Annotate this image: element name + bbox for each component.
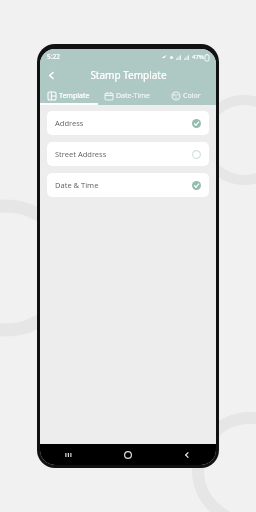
button[interactable]: Color (157, 86, 216, 105)
button[interactable]: Back (157, 444, 216, 465)
staticText: Stamp Template (90, 68, 167, 82)
staticText: Date & Time (55, 180, 99, 190)
button[interactable]: Template (40, 86, 98, 105)
button[interactable]: Back (40, 64, 62, 86)
button[interactable]: Address (47, 111, 209, 135)
button[interactable]: Home (98, 444, 157, 465)
button[interactable]: Selected (192, 181, 201, 190)
button[interactable]: Not selected (192, 150, 201, 159)
staticText: Template (59, 91, 90, 101)
staticText: Date-Time (116, 91, 150, 101)
staticText: 47% (192, 53, 204, 61)
button[interactable]: Date-Time (98, 86, 157, 105)
button[interactable]: Date & Time (47, 173, 209, 197)
staticText: 5:22 (47, 52, 60, 61)
button[interactable]: Street Address (47, 142, 209, 166)
button[interactable]: Recents (40, 444, 98, 465)
staticText: Street Address (55, 149, 107, 159)
button[interactable]: Selected (192, 119, 201, 128)
staticText: Address (55, 118, 84, 128)
staticText: Color (183, 91, 201, 101)
